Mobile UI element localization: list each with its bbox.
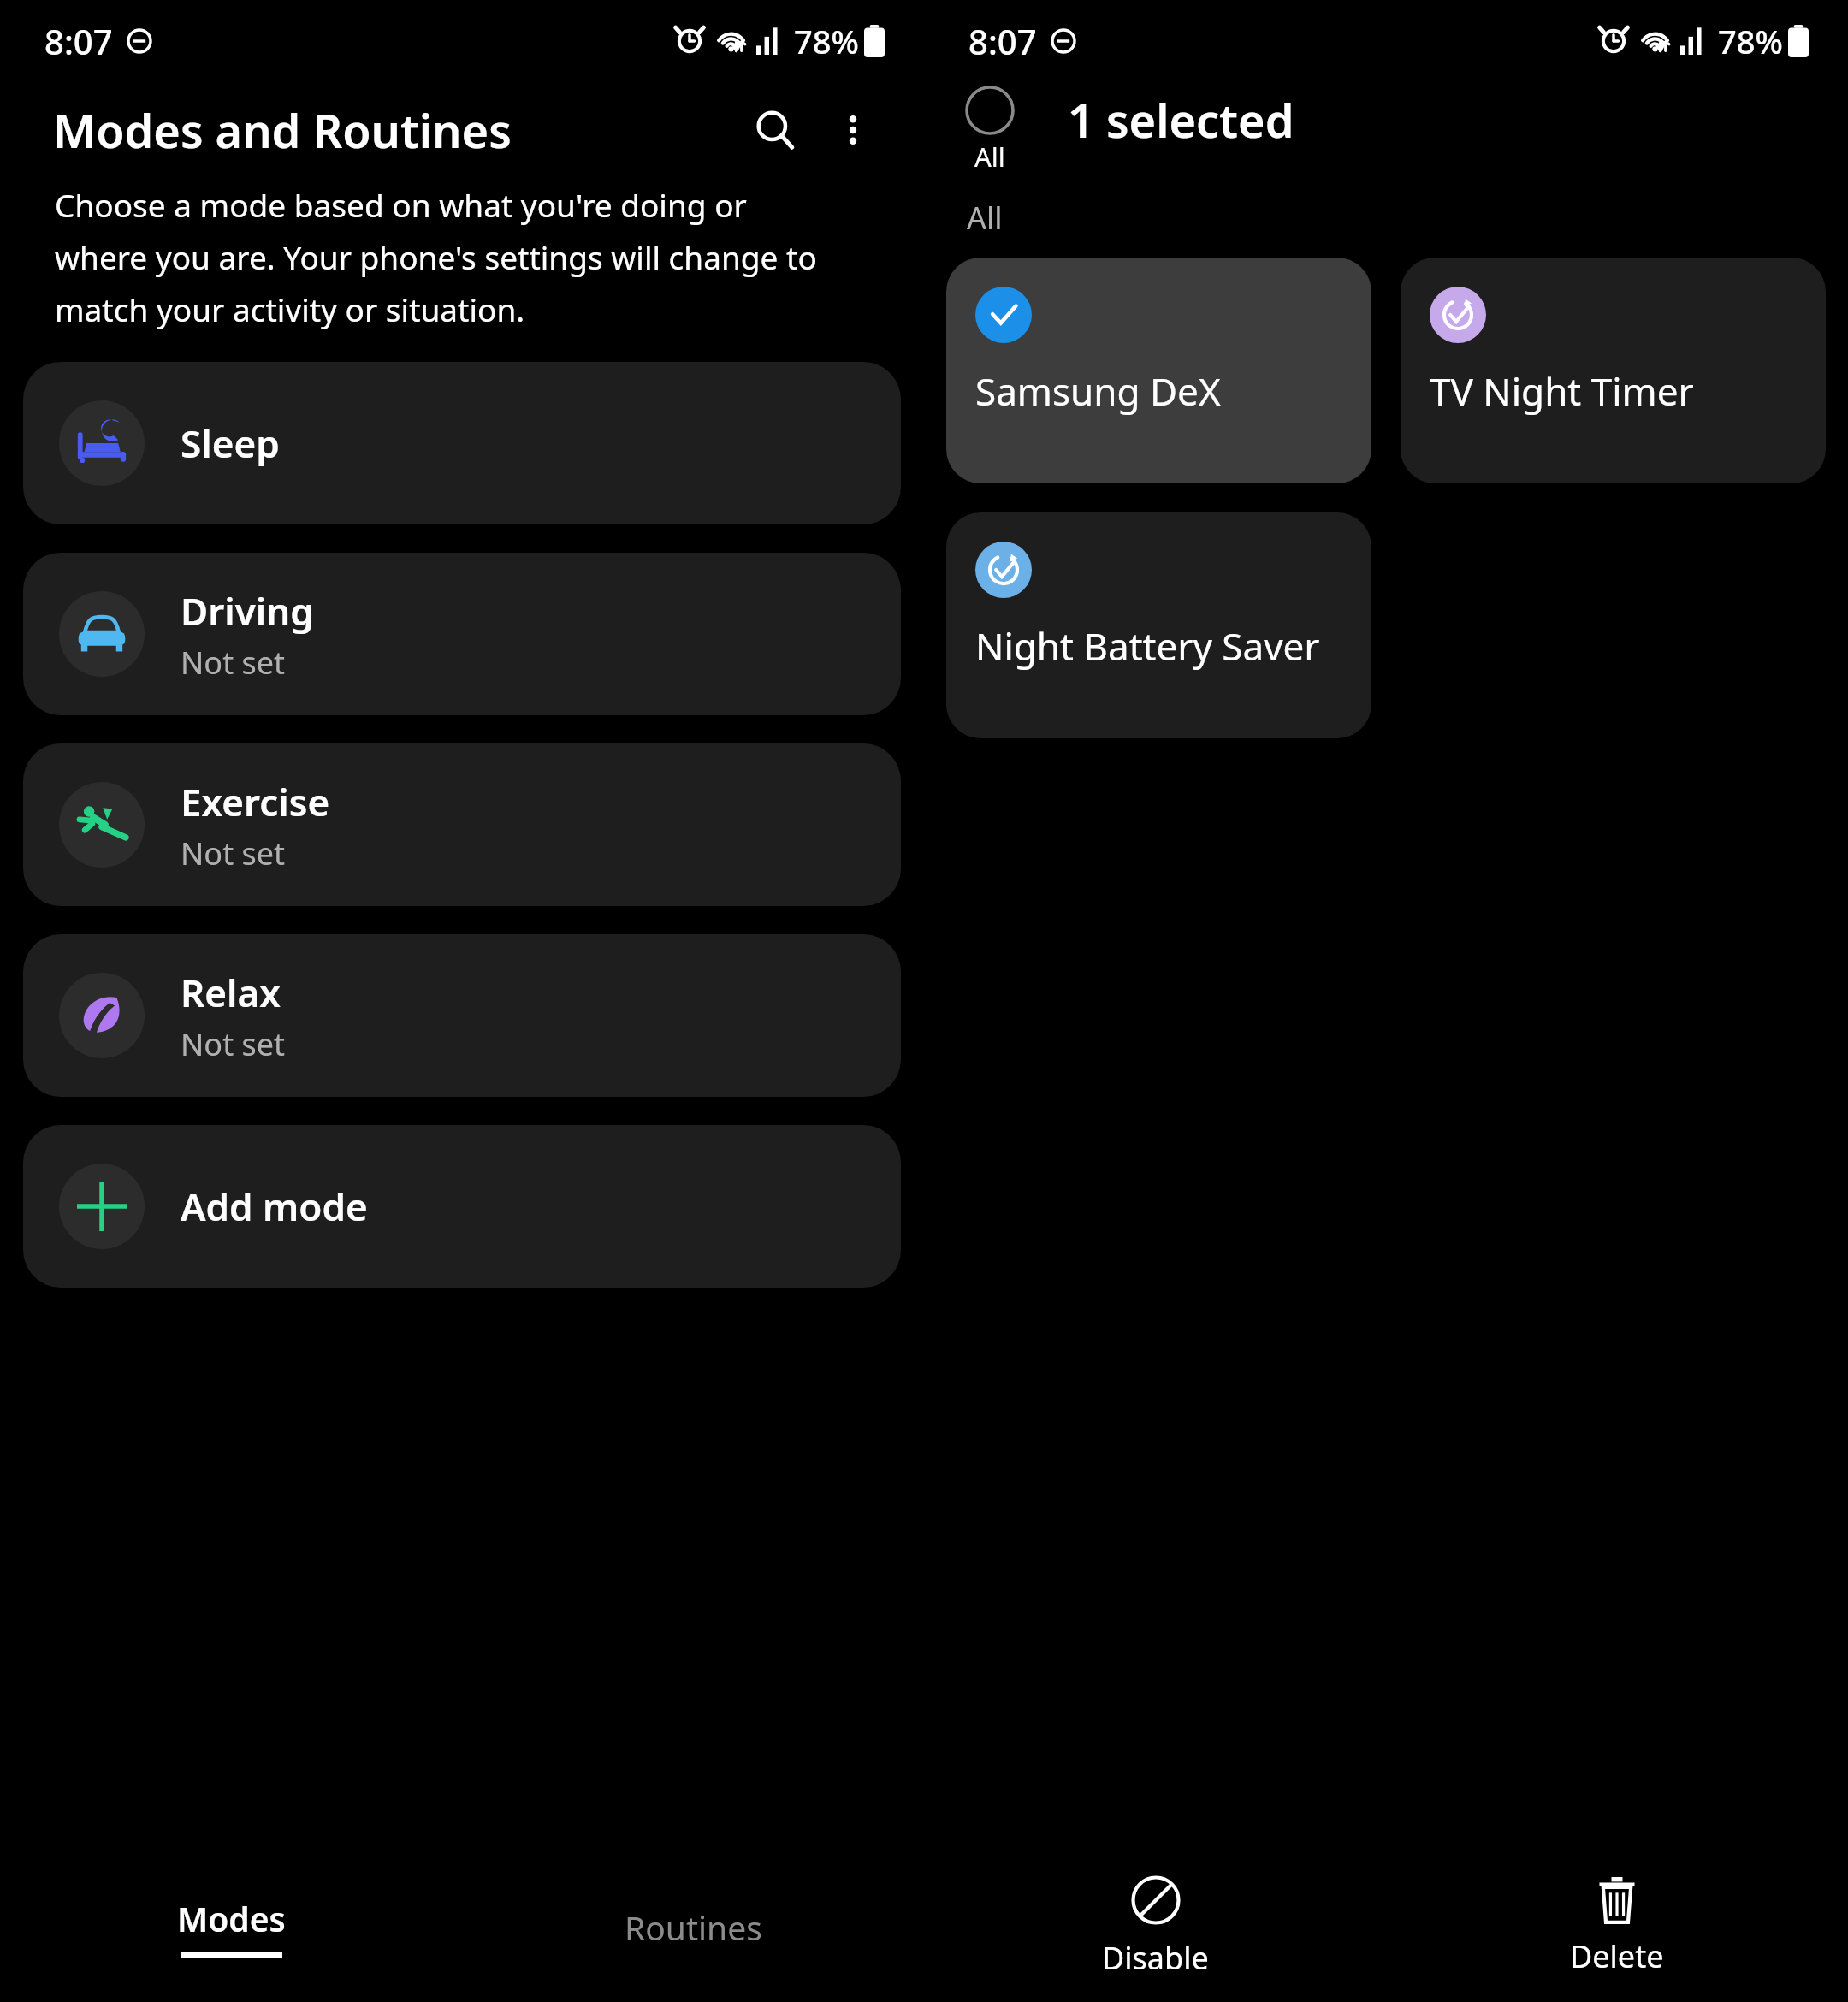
button[interactable]: Delete xyxy=(1386,1851,1848,2002)
staticText: 8:07 xyxy=(44,18,113,64)
button[interactable]: Samsung DeX xyxy=(946,258,1371,483)
button[interactable]: All xyxy=(950,86,1030,175)
staticText: All xyxy=(974,139,1005,175)
staticText: Relax xyxy=(181,967,281,1018)
staticText: TV Night Timer xyxy=(1430,365,1694,417)
staticText: 8:07 xyxy=(968,18,1037,64)
button[interactable]: Disable xyxy=(924,1851,1386,2002)
staticText: Choose a mode based on what you're doing… xyxy=(55,183,842,331)
staticText: Disable xyxy=(1102,1937,1209,1979)
button[interactable]: Relax xyxy=(23,934,901,1097)
staticText: All xyxy=(967,197,1003,239)
staticText: 78% xyxy=(1718,19,1783,63)
staticText: Modes xyxy=(177,1896,286,1941)
button[interactable]: Sleep xyxy=(23,362,901,524)
staticText: Not set xyxy=(181,642,286,684)
staticText: Add mode xyxy=(181,1181,368,1232)
staticText: 1 selected xyxy=(1068,88,1294,151)
button[interactable]: Driving xyxy=(23,553,901,715)
button[interactable]: TV Night Timer xyxy=(1401,258,1826,483)
staticText: Driving xyxy=(181,585,314,637)
staticText: Exercise xyxy=(181,776,330,827)
button[interactable]: Modes xyxy=(0,1851,462,2002)
staticText: Modes and Routines xyxy=(53,98,512,162)
button[interactable]: Search xyxy=(734,89,816,171)
staticText: 78% xyxy=(794,19,859,63)
button[interactable]: More options xyxy=(816,93,890,167)
button[interactable]: Routines xyxy=(462,1851,924,2002)
staticText: Not set xyxy=(181,1023,286,1065)
staticText: Routines xyxy=(625,1904,762,1950)
staticText: Night Battery Saver xyxy=(975,620,1320,672)
button[interactable]: Night Battery Saver xyxy=(946,512,1371,738)
staticText: Delete xyxy=(1570,1935,1664,1977)
staticText: Samsung DeX xyxy=(975,365,1221,417)
staticText: Sleep xyxy=(181,418,280,469)
button[interactable]: Add mode xyxy=(23,1125,901,1288)
button[interactable]: Exercise xyxy=(23,743,901,906)
staticText: Not set xyxy=(181,832,286,874)
